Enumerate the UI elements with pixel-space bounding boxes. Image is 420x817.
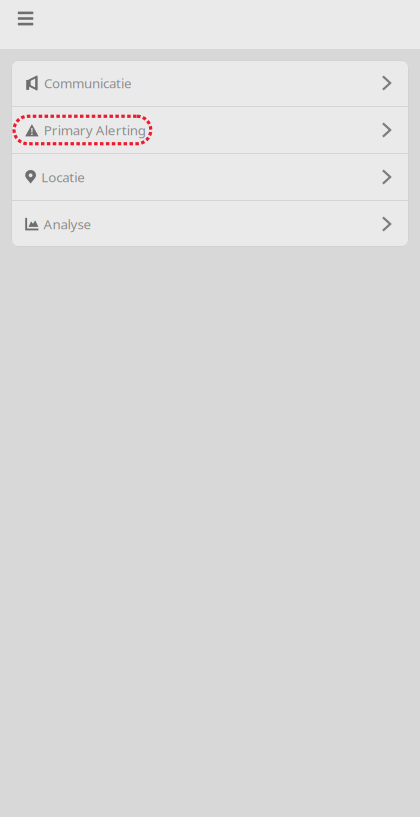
staticText: Primary Alerting — [44, 121, 146, 139]
button[interactable]: Locatie — [11, 154, 409, 200]
staticText: Locatie — [41, 168, 85, 186]
button[interactable]: Communicatie — [11, 60, 409, 106]
staticText: Analyse — [44, 215, 92, 233]
button[interactable]: Analyse — [11, 201, 409, 247]
button[interactable]: Menu — [0, 0, 47, 49]
button[interactable]: Primary Alerting — [11, 107, 409, 153]
staticText: Communicatie — [44, 74, 132, 92]
